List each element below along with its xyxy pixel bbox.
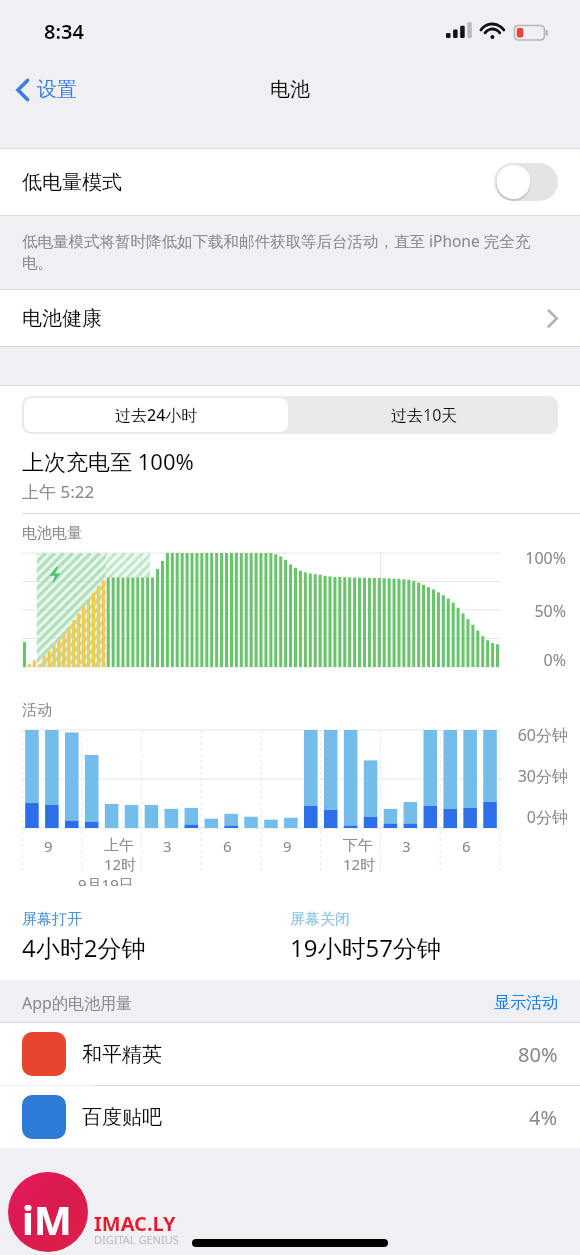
- staticText: 过去10天: [391, 404, 458, 426]
- button[interactable]: 低电量模式: [0, 149, 580, 215]
- staticText: 下午 12时: [343, 836, 376, 874]
- staticText: 3: [402, 836, 411, 856]
- button[interactable]: 设置: [0, 71, 89, 108]
- staticText: 电池电量: [22, 524, 82, 543]
- staticText: 6: [462, 836, 471, 856]
- staticText: 上午 12时: [104, 836, 137, 874]
- staticText: 过去24小时: [115, 404, 198, 426]
- staticText: 9: [283, 836, 292, 856]
- staticText: DIGITAL GENIUS: [94, 1232, 179, 1247]
- staticText: 100%: [502, 547, 566, 569]
- button[interactable]: 和平精英: [0, 1023, 580, 1085]
- staticText: 低电量模式: [22, 170, 122, 195]
- staticText: 60分钟: [500, 724, 568, 746]
- staticText: 设置: [37, 77, 77, 102]
- staticText: 百度贴吧: [82, 1105, 162, 1130]
- staticText: 9月19日: [78, 874, 134, 886]
- staticText: 屏幕打开: [22, 910, 82, 929]
- staticText: 19小时57分钟: [290, 931, 441, 964]
- staticText: 8:34: [44, 18, 84, 45]
- button[interactable]: Low Power Mode toggle: [494, 163, 558, 201]
- staticText: 80%: [518, 1041, 558, 1068]
- button[interactable]: 过去24小时: [24, 398, 288, 432]
- staticText: 上午 5:22: [22, 480, 95, 503]
- staticText: 50%: [502, 600, 566, 622]
- staticText: 4小时2分钟: [22, 931, 146, 964]
- staticText: 6: [223, 836, 232, 856]
- staticText: 和平精英: [82, 1042, 162, 1067]
- staticText: 电池健康: [22, 306, 102, 331]
- staticText: 30分钟: [500, 765, 568, 787]
- staticText: 低电量模式将暂时降低如下载和邮件获取等后台活动，直至 iPhone 完全充电。: [22, 230, 546, 273]
- staticText: 4%: [529, 1104, 558, 1131]
- staticText: 上次充电至 100%: [22, 446, 194, 476]
- button[interactable]: 电池健康: [0, 290, 580, 346]
- button[interactable]: 过去10天: [290, 396, 558, 434]
- staticText: 电池: [270, 77, 310, 102]
- staticText: 0%: [502, 649, 566, 671]
- staticText: IMAC.LY: [94, 1210, 176, 1237]
- staticText: 9: [44, 836, 53, 856]
- button[interactable]: 百度贴吧: [0, 1086, 580, 1148]
- staticText: 活动: [22, 701, 52, 720]
- button[interactable]: 显示活动: [494, 993, 558, 1013]
- staticText: 3: [163, 836, 172, 856]
- staticText: 0分钟: [500, 806, 568, 828]
- staticText: 屏幕关闭: [290, 910, 350, 929]
- staticText: 显示活动: [494, 993, 558, 1013]
- staticText: App的电池用量: [22, 992, 132, 1014]
- staticText: iM: [22, 1192, 72, 1246]
